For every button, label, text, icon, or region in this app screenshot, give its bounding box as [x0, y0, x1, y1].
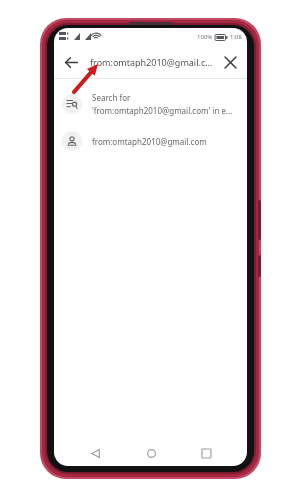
button[interactable]: Back — [81, 440, 109, 466]
button[interactable]: Clear search — [217, 49, 243, 75]
staticText: from:omtaph2010@gmail.com — [90, 56, 213, 68]
button[interactable]: from:omtaph2010@gmail.com — [90, 46, 213, 78]
staticText: 1:08 — [230, 33, 242, 41]
button[interactable]: Back — [58, 49, 84, 75]
button[interactable]: from:omtaph2010@gmail.com — [54, 124, 247, 158]
staticText: 100% — [197, 33, 213, 41]
button[interactable]: Home — [137, 440, 165, 466]
staticText: from:omtaph2010@gmail.com — [92, 136, 207, 147]
staticText: 'from:omtaph2010@gmail.com' in e… — [92, 105, 233, 116]
button[interactable]: Search for — [54, 84, 247, 124]
staticText: Search for — [92, 92, 131, 103]
button[interactable]: Recent apps — [192, 440, 220, 466]
